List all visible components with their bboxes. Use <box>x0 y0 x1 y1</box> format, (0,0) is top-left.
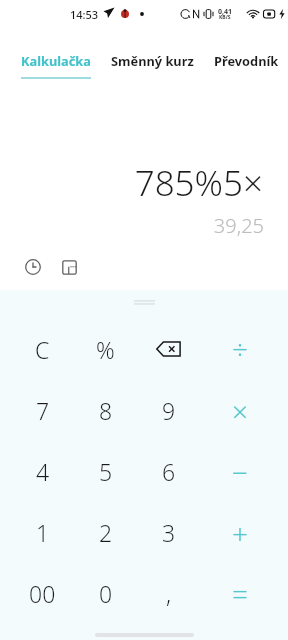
staticText: = <box>232 575 248 613</box>
staticText: 1 <box>36 517 50 548</box>
staticText: C <box>35 334 50 365</box>
staticText: 7 <box>36 395 50 426</box>
staticText: Převodník <box>214 52 279 69</box>
staticText: 0 <box>99 578 113 609</box>
button[interactable]: , <box>137 563 200 624</box>
staticText: × <box>232 392 248 430</box>
button[interactable]: 3 <box>137 502 200 563</box>
staticText: 0,41 <box>218 7 233 17</box>
button[interactable]: 0 <box>74 563 137 624</box>
staticText: 8 <box>99 395 113 426</box>
button[interactable]: + <box>200 502 279 563</box>
button[interactable]: 6 <box>137 441 200 502</box>
staticText: 785%5× <box>0 159 263 207</box>
button[interactable]: = <box>200 563 279 624</box>
staticText: 5 <box>99 456 113 487</box>
staticText: Směnný kurz <box>111 52 194 69</box>
other: Backspace <box>156 341 181 357</box>
button[interactable]: Převodník <box>214 28 279 90</box>
staticText: , <box>166 578 172 609</box>
staticText: KB/S <box>219 14 231 21</box>
button[interactable]: History <box>21 255 45 279</box>
button[interactable]: 5 <box>74 441 137 502</box>
button[interactable]: % <box>74 318 137 380</box>
button[interactable]: Kalkulačka <box>21 28 91 90</box>
button[interactable]: 1 <box>11 502 74 563</box>
staticText: 9 <box>162 395 176 426</box>
staticText: 4 <box>36 456 50 487</box>
button[interactable]: ÷ <box>200 318 279 380</box>
button[interactable]: C <box>11 318 74 380</box>
staticText: 6 <box>162 456 176 487</box>
button[interactable]: Layout <box>57 255 81 279</box>
button[interactable]: 8 <box>74 380 137 441</box>
staticText: 39,25 <box>0 212 264 239</box>
button[interactable]: 2 <box>74 502 137 563</box>
staticText: 14:53 <box>70 7 99 22</box>
button[interactable]: 4 <box>11 441 74 502</box>
staticText: % <box>96 334 115 365</box>
button[interactable]: 7 <box>11 380 74 441</box>
button[interactable]: × <box>200 380 279 441</box>
staticText: − <box>232 453 248 491</box>
staticText: 00 <box>29 578 56 609</box>
button[interactable]: 9 <box>137 380 200 441</box>
button[interactable]: − <box>200 441 279 502</box>
button[interactable]: 00 <box>11 563 74 624</box>
staticText: 3 <box>162 517 176 548</box>
staticText: ÷ <box>232 330 248 368</box>
staticText: 2 <box>99 517 113 548</box>
button[interactable]: Backspace <box>137 318 200 380</box>
button[interactable]: Směnný kurz <box>111 28 194 90</box>
staticText: + <box>232 514 248 552</box>
staticText: Kalkulačka <box>21 52 91 69</box>
